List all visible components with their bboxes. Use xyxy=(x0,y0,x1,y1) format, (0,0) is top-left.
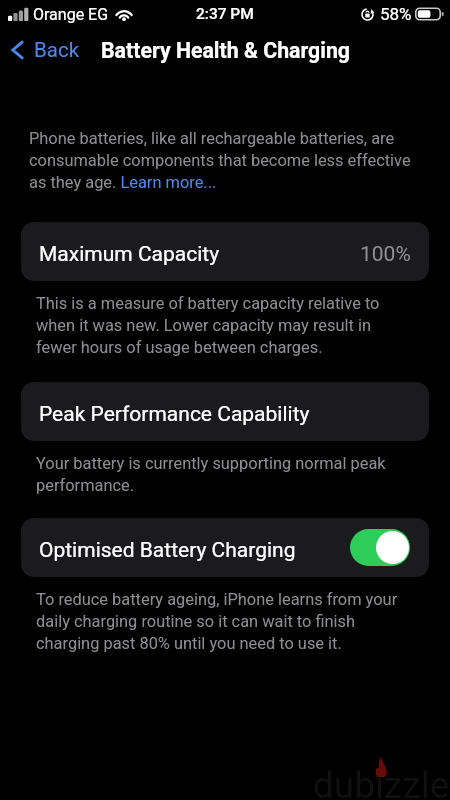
staticText: Peak Performance Capability xyxy=(39,402,310,427)
button[interactable]: Optimised Battery Charging xyxy=(21,518,429,577)
staticText: 100% xyxy=(360,242,411,267)
button[interactable]: Maximum Capacity xyxy=(21,222,429,281)
staticText: Maximum Capacity xyxy=(39,242,220,267)
staticText: Your battery is currently supporting nor… xyxy=(36,454,407,495)
button[interactable]: Back xyxy=(0,34,88,66)
other: Wi-Fi xyxy=(115,8,133,22)
staticText: This is a measure of battery capacity re… xyxy=(36,294,407,357)
staticText: dubizzle xyxy=(313,764,450,800)
other: Rotation lock xyxy=(361,8,374,21)
staticText: Battery Health & Charging xyxy=(101,38,350,63)
staticText: 58% xyxy=(380,4,412,24)
button[interactable]: Peak Performance Capability xyxy=(21,382,429,441)
button[interactable]: Learn more xyxy=(118,172,215,191)
button[interactable]: Optimised Battery Charging toggle xyxy=(349,529,411,566)
staticText: Back xyxy=(34,38,80,62)
staticText: Phone batteries, like all rechargeable b… xyxy=(29,129,415,192)
staticText: To reduce battery ageing, iPhone learns … xyxy=(36,590,407,653)
staticText: Orange EG xyxy=(33,5,109,24)
staticText: 2:37 PM xyxy=(196,5,254,23)
staticText: Optimised Battery Charging xyxy=(39,538,296,563)
